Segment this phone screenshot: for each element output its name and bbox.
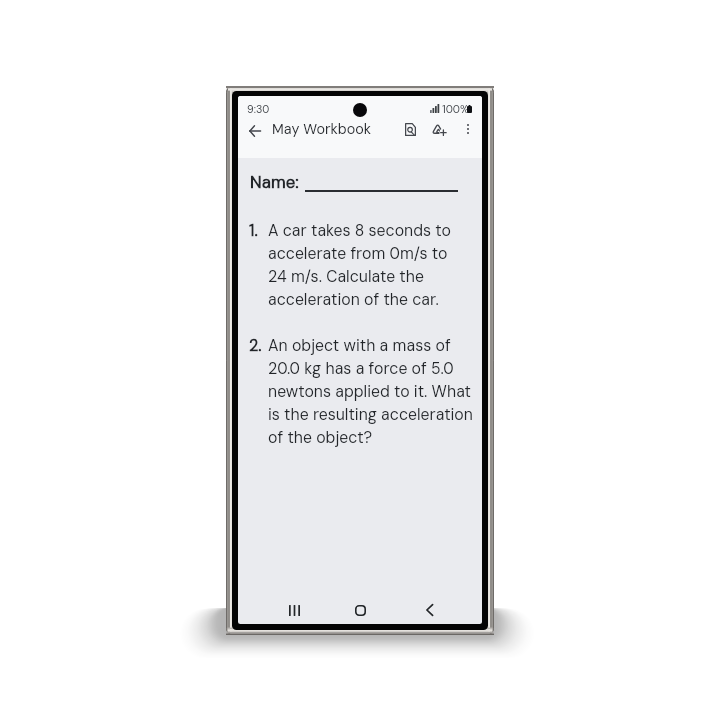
staticText: 100% — [442, 102, 469, 116]
button[interactable]: Find in document — [395, 114, 425, 144]
button[interactable]: Home — [342, 596, 378, 624]
button[interactable]: Recent apps — [276, 596, 312, 624]
staticText: Name: — [250, 171, 299, 193]
staticText: 2. — [249, 333, 262, 356]
staticText: An object with a mass of 20.0 kg has a f… — [268, 333, 482, 448]
staticText: May Workbook — [272, 120, 371, 139]
staticText: 1. — [249, 218, 258, 241]
staticText: 9:30 — [247, 102, 270, 116]
button[interactable]: Navigate up — [238, 113, 272, 148]
button[interactable]: More options — [453, 114, 482, 144]
staticText: A car takes 8 seconds to accelerate from… — [268, 218, 482, 310]
button[interactable]: Add smart note — [424, 115, 454, 145]
button[interactable]: Back — [411, 596, 447, 624]
